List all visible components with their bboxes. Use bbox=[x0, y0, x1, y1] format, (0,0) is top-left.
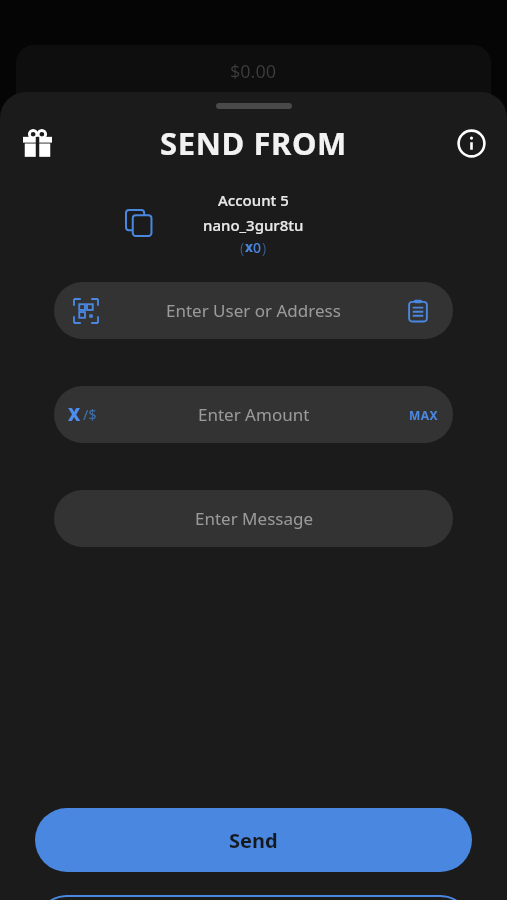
staticText: Send bbox=[229, 827, 278, 854]
button[interactable]: Gift bbox=[16, 122, 58, 164]
button[interactable]: Paste bbox=[403, 296, 433, 326]
staticText: $0.00 bbox=[230, 59, 277, 84]
staticText: X bbox=[245, 240, 253, 255]
button[interactable]: Scan QR bbox=[70, 295, 102, 327]
staticText: Enter Amount bbox=[198, 403, 310, 426]
button[interactable]: X bbox=[68, 403, 97, 426]
button[interactable]: Copy address bbox=[122, 206, 156, 240]
button[interactable]: X bbox=[54, 386, 453, 443]
staticText: 0 bbox=[253, 238, 262, 256]
staticText: Enter Message bbox=[195, 507, 313, 530]
button[interactable]: Info bbox=[453, 125, 489, 161]
staticText: X bbox=[68, 403, 81, 426]
button[interactable]: Send bbox=[35, 808, 472, 872]
staticText: ( bbox=[240, 238, 245, 256]
staticText: ) bbox=[262, 238, 267, 256]
button[interactable]: Scan QR bbox=[54, 282, 453, 339]
staticText: SEND FROM bbox=[160, 122, 347, 164]
button[interactable]: Enter Message bbox=[54, 490, 453, 547]
staticText: MAX bbox=[409, 407, 439, 423]
staticText: /$ bbox=[83, 405, 97, 424]
button[interactable]: MAX bbox=[409, 407, 439, 423]
button[interactable]: Scan QR Code bbox=[35, 895, 472, 900]
staticText: nano_3gur8tu bbox=[203, 215, 304, 235]
staticText: Enter User or Address bbox=[166, 299, 341, 322]
staticText: Account 5 bbox=[218, 190, 289, 210]
